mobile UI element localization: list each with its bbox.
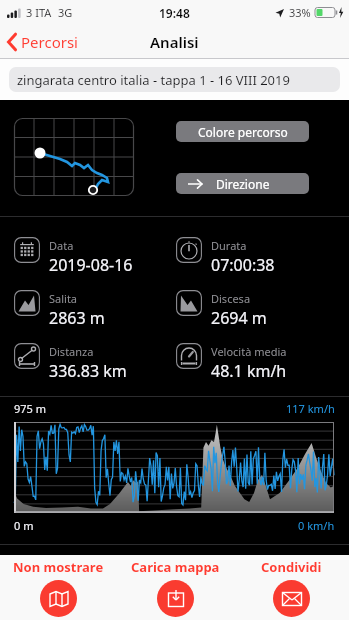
button[interactable]: Non mostrare — [0, 555, 117, 620]
staticText: Velocità media — [211, 344, 287, 359]
button[interactable]: Colore percorso — [176, 121, 309, 142]
button[interactable]: Percorsi — [6, 32, 78, 52]
button[interactable]: Distanza — [14, 343, 174, 382]
staticText: Distanza — [49, 344, 94, 359]
staticText: 117 km/h — [286, 401, 335, 416]
button[interactable]: Durata — [176, 237, 349, 276]
button[interactable]: Discesa — [176, 290, 349, 329]
staticText: Data — [49, 238, 74, 253]
staticText: Discesa — [211, 291, 251, 306]
staticText: 2694 m — [211, 307, 267, 329]
staticText: Condividi — [261, 558, 322, 576]
staticText: Percorsi — [21, 32, 78, 52]
staticText: 19:48 — [159, 5, 190, 21]
staticText: Analisi — [150, 32, 199, 52]
staticText: zingarata centro italia - tappa 1 - 16 V… — [17, 71, 290, 89]
staticText: Colore percorso — [198, 124, 288, 140]
staticText: 0 m — [14, 518, 34, 533]
button[interactable]: zingarata centro italia - tappa 1 - 16 V… — [9, 67, 340, 92]
button[interactable]: Velocità media — [176, 343, 349, 382]
button[interactable]: Condividi — [233, 555, 349, 620]
staticText: Carica mappa — [131, 558, 220, 576]
staticText: 0 km/h — [298, 518, 335, 533]
staticText: 336.83 km — [49, 360, 127, 382]
staticText: 2863 m — [49, 307, 105, 329]
button[interactable] — [14, 118, 134, 196]
staticText: 3 ITA — [26, 5, 52, 20]
staticText: 2019-08-16 — [49, 254, 133, 276]
staticText: 33% — [289, 5, 311, 20]
button[interactable]: Salita — [14, 290, 174, 329]
staticText: 07:00:38 — [211, 254, 275, 276]
button[interactable]: Carica mappa — [117, 555, 233, 620]
button[interactable]: Data — [14, 237, 174, 276]
staticText: Direzione — [216, 176, 270, 192]
button[interactable]: Direzione — [176, 173, 309, 194]
staticText: 975 m — [14, 401, 47, 416]
staticText: Salita — [49, 291, 78, 306]
staticText: 48.1 km/h — [211, 360, 287, 382]
staticText: Non mostrare — [13, 558, 104, 576]
staticText: 3G — [58, 5, 73, 20]
staticText: Durata — [211, 238, 247, 253]
